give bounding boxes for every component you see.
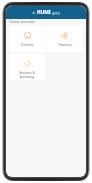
button[interactable]: Dentistry [9,26,45,52]
staticText: Choose your area [9,20,35,24]
staticText: HUMI [37,9,51,16]
staticText: APPS [52,11,60,15]
staticText: Anatomy & physiology [19,71,35,79]
staticText: Dentistry [21,43,34,47]
staticText: Pharmacy [58,43,72,47]
button[interactable]: Pharmacy [46,26,83,52]
button[interactable]: Anatomy & physiology [9,54,45,80]
